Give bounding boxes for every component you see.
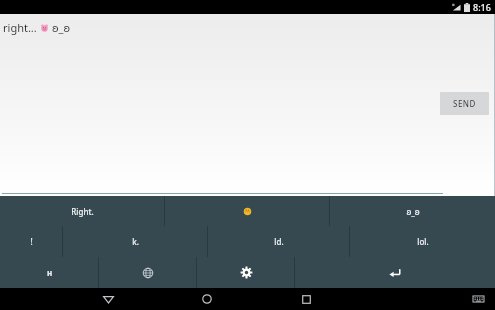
staticText: lol. (417, 236, 429, 247)
button[interactable]: Emoji suggestion (165, 196, 330, 226)
staticText: 8:16 (473, 1, 491, 13)
button[interactable]: Switch input (0, 257, 99, 288)
button[interactable]: Recent apps (283, 288, 329, 310)
staticText: ! (30, 236, 33, 247)
other: Change language (142, 267, 154, 279)
button[interactable]: Keyboard (465, 288, 491, 310)
button[interactable]: Change language (99, 257, 197, 288)
staticText: right... (3, 20, 37, 35)
button[interactable]: SEND (440, 92, 489, 115)
staticText: ʚ_ʚ (406, 206, 420, 217)
other: Settings (240, 266, 253, 279)
button[interactable]: Right. (0, 196, 165, 226)
other: Switch input (47, 267, 53, 278)
button[interactable]: ! (0, 226, 63, 257)
staticText: н (47, 267, 53, 278)
button[interactable]: lol. (350, 226, 495, 257)
button[interactable]: Home (184, 288, 230, 310)
staticText: Right. (71, 206, 94, 217)
staticText: ʚ_ʚ (52, 20, 71, 35)
other: Enter (388, 267, 402, 279)
staticText: ld. (274, 236, 284, 247)
button[interactable]: Enter (295, 257, 495, 288)
button[interactable]: k. (63, 226, 208, 257)
button[interactable]: ʚ_ʚ (330, 196, 495, 226)
button[interactable]: Settings (197, 257, 295, 288)
other: Emoji suggestion (243, 207, 252, 216)
staticText: k. (132, 236, 139, 247)
staticText: SEND (453, 98, 476, 109)
button[interactable]: Back (85, 288, 131, 310)
button[interactable]: ld. (208, 226, 350, 257)
